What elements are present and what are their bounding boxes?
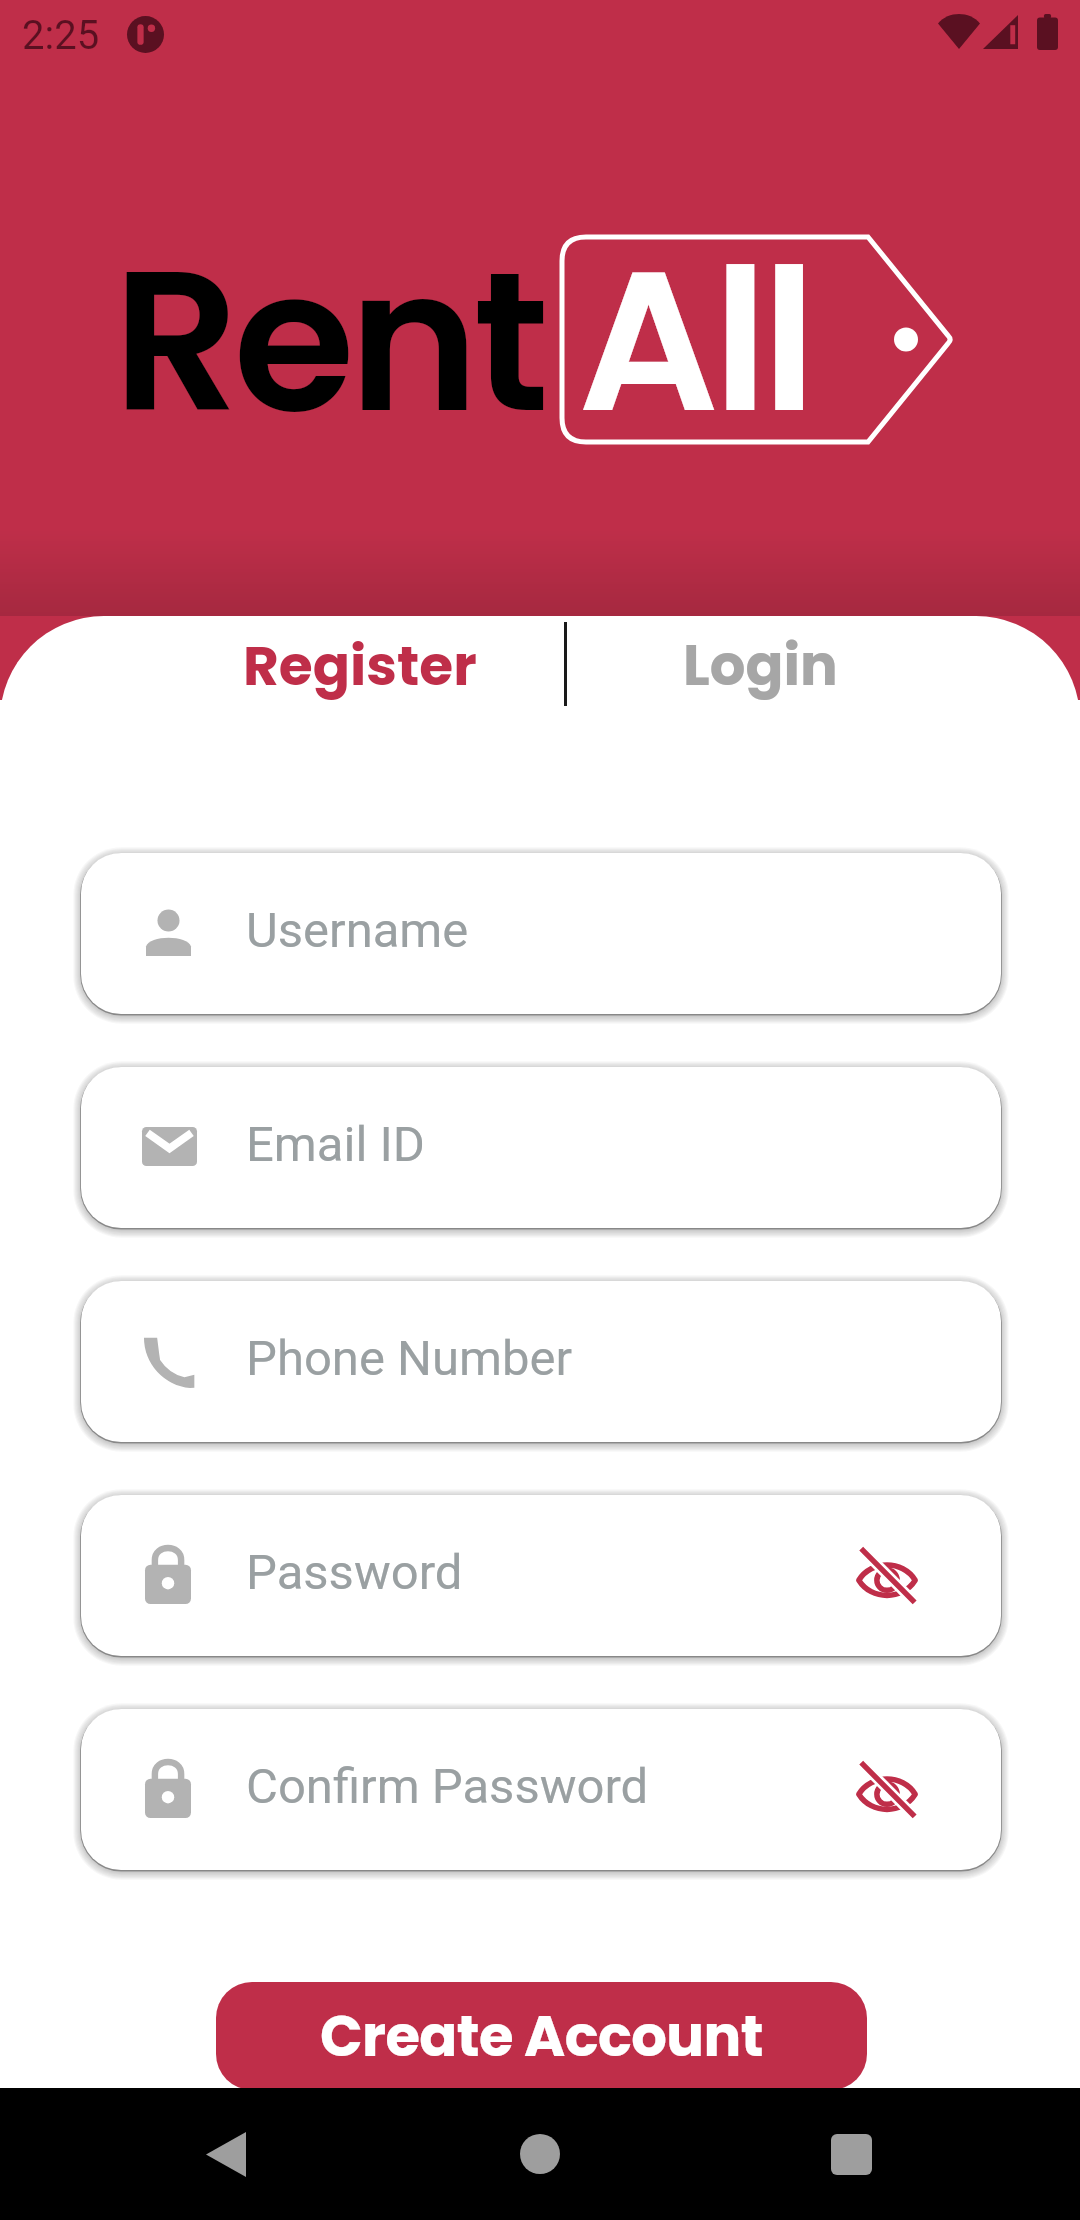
staticText: Rent	[113, 203, 544, 479]
button[interactable]: Email ID	[81, 1067, 1001, 1228]
button[interactable]: Confirm Password	[81, 1709, 1001, 1870]
staticText: 2:25	[22, 12, 100, 59]
staticText: Phone Number	[246, 1330, 573, 1387]
staticText: Create Account	[320, 1997, 763, 2075]
button[interactable]: Register	[150, 616, 570, 720]
staticText: Email ID	[246, 1116, 425, 1173]
staticText: Login	[683, 626, 838, 704]
button[interactable]: Toggle password visibility	[847, 1535, 927, 1615]
button[interactable]: Toggle password visibility	[847, 1749, 927, 1829]
staticText: Password	[246, 1544, 463, 1601]
staticText: Username	[246, 902, 469, 959]
button[interactable]: Create Account	[216, 1982, 867, 2090]
button[interactable]: Recent apps	[781, 2088, 921, 2220]
staticText: Confirm Password	[246, 1758, 649, 1815]
button[interactable]: Password	[81, 1495, 1001, 1656]
button[interactable]: Back	[156, 2088, 296, 2220]
button[interactable]: Home	[470, 2088, 610, 2220]
staticText: Register	[243, 627, 477, 704]
staticText: All	[578, 203, 811, 479]
button[interactable]: Login	[570, 616, 950, 720]
button[interactable]: Phone Number	[81, 1281, 1001, 1442]
button[interactable]: Username	[81, 853, 1001, 1014]
